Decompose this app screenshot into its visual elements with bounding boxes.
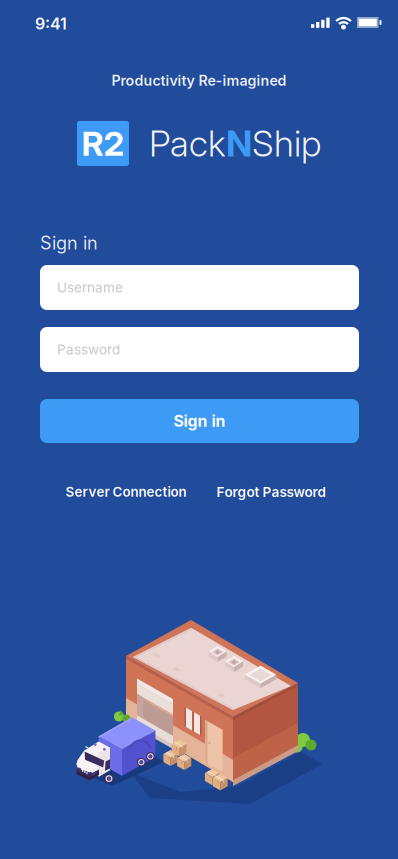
staticText: Sign in <box>173 411 225 431</box>
staticText: Pack <box>149 122 226 165</box>
staticText: R2 <box>81 123 124 164</box>
button[interactable]: Sign in <box>40 399 359 443</box>
button[interactable]: Forgot Password <box>208 481 334 503</box>
staticText: N <box>226 122 252 165</box>
staticText: Username <box>57 279 123 296</box>
staticText: 9:41 <box>35 14 67 33</box>
staticText: Password <box>57 341 120 358</box>
button[interactable]: Server Connection <box>61 481 191 503</box>
staticText: Productivity Re-imagined <box>111 72 286 89</box>
staticText: Ship <box>252 122 321 165</box>
staticText: Sign in <box>40 232 98 254</box>
staticText: Server Connection <box>65 484 186 500</box>
staticText: Forgot Password <box>216 484 325 500</box>
